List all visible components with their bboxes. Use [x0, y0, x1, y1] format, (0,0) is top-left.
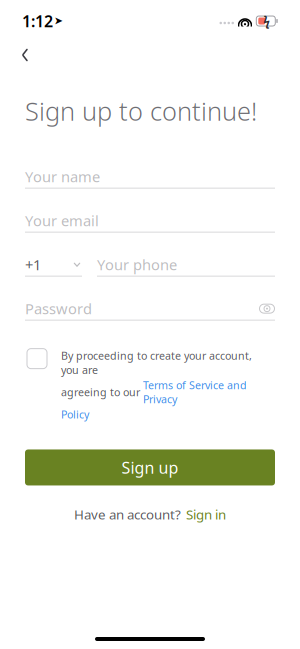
staticText: Your email: [25, 211, 99, 230]
staticText: Password: [25, 299, 92, 318]
staticText: By proceeding to create your account, yo…: [61, 349, 252, 377]
staticText: 1:12: [22, 10, 53, 32]
staticText: ➤: [54, 14, 63, 26]
staticText: Your name: [25, 167, 100, 186]
staticText: Sign up to continue!: [25, 94, 257, 128]
staticText: Policy: [61, 407, 89, 421]
button[interactable]: +1: [25, 254, 82, 277]
button[interactable]: Back: [8, 40, 42, 70]
staticText: ϟ: [263, 13, 270, 29]
staticText: Sign in: [186, 505, 226, 523]
button[interactable]: Have an account?: [74, 505, 226, 523]
staticText: agreeing to our: [61, 385, 143, 399]
button[interactable]: Policy: [61, 407, 89, 421]
staticText: Terms of Service and Privacy: [143, 378, 247, 406]
button[interactable]: Terms of Service and Privacy: [143, 378, 247, 406]
staticText: Have an account?: [74, 505, 181, 523]
staticText: Your phone: [97, 255, 177, 274]
staticText: +1: [25, 255, 41, 274]
button[interactable]: Show password: [259, 301, 275, 317]
button[interactable]: Sign up: [25, 449, 275, 485]
button[interactable]: Agree to terms: [27, 349, 47, 369]
staticText: Sign up: [121, 457, 178, 478]
